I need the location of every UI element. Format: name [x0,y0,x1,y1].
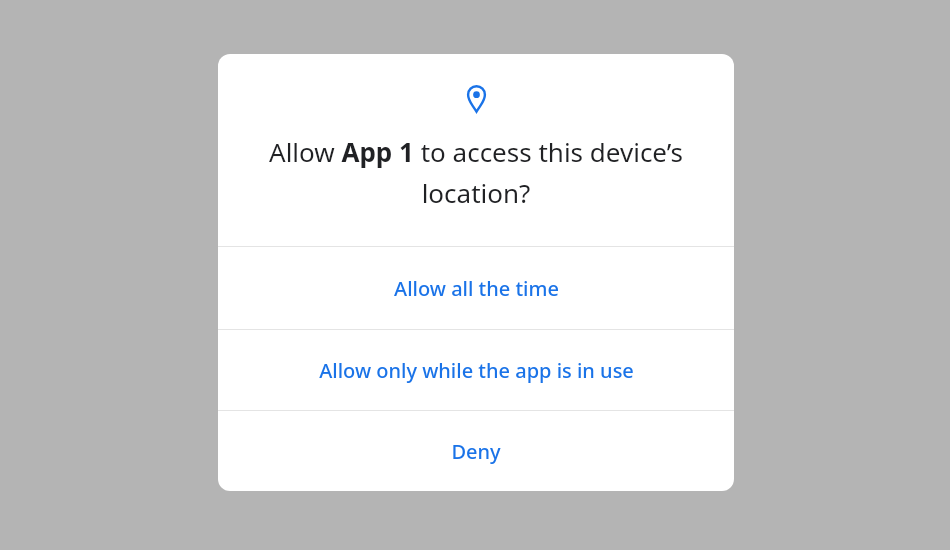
button[interactable]: Allow only while the app is in use [218,330,734,410]
button[interactable]: Allow all the time [218,247,734,329]
other: Location [466,85,487,112]
staticText: Deny [451,438,501,465]
staticText: Allow only while the app is in use [319,357,634,384]
button[interactable]: Deny [218,411,734,491]
staticText: Allow all the time [394,275,559,302]
staticText: Allow App 1 to access this device’s loca… [242,134,710,211]
